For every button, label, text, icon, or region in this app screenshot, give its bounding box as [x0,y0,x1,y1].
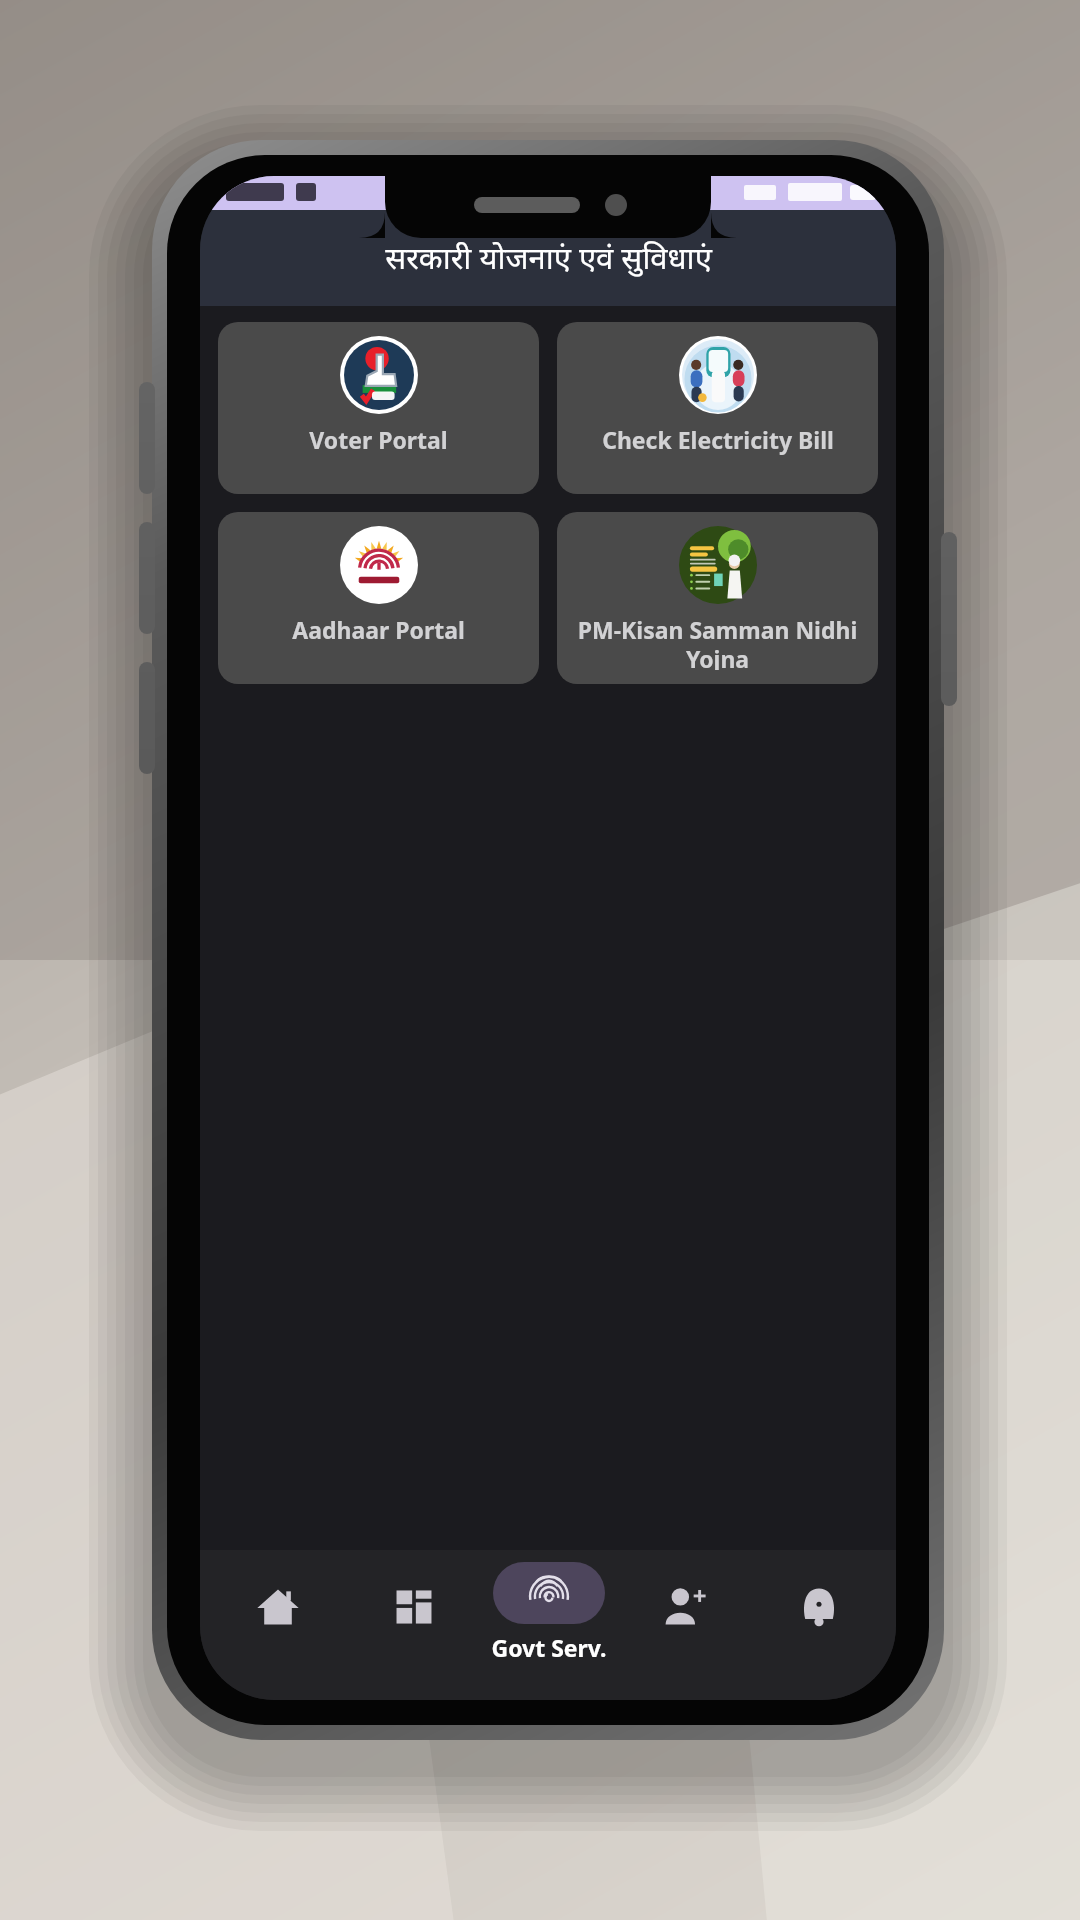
button[interactable]: Dashboard [346,1550,481,1700]
staticText: PM-Kisan Samman Nidhi Yojna [567,614,868,670]
staticText: Check Electricity Bill [602,424,834,455]
button[interactable]: Voter Portal [218,322,539,494]
staticText: सरकारी योजनाएं एवं सुविधाएं [385,236,712,278]
button[interactable]: Govt Serv. [481,1550,616,1700]
button[interactable]: Check Electricity Bill [557,322,878,494]
button[interactable]: PM-Kisan Samman Nidhi Yojna [557,512,878,684]
staticText: Govt Serv. [491,1632,607,1663]
staticText: Voter Portal [309,424,448,455]
button[interactable]: Add contact [616,1550,751,1700]
staticText: Aadhaar Portal [292,614,465,645]
button[interactable]: Home [210,1550,346,1700]
button[interactable]: Notifications [751,1550,886,1700]
button[interactable]: Aadhaar Portal [218,512,539,684]
